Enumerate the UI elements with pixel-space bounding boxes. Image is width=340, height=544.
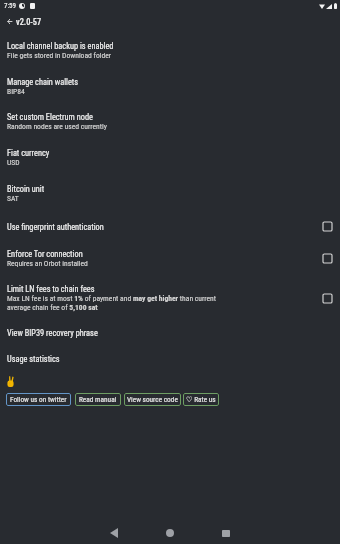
staticText: Limit LN fees to chain fees xyxy=(7,284,95,294)
button[interactable]: Limit LN fees to chain fees xyxy=(0,276,340,320)
staticText: Local channel backup is enabled xyxy=(7,41,114,51)
button[interactable]: Fiat currency xyxy=(0,139,340,175)
button[interactable]: View source code xyxy=(124,393,181,406)
staticText: Enforce Tor connection xyxy=(7,249,83,259)
staticText: View BIP39 recovery phrase xyxy=(7,328,98,338)
button[interactable]: Recents xyxy=(212,522,240,544)
button[interactable]: Bitcoin unit xyxy=(0,175,340,212)
button[interactable]: View BIP39 recovery phrase xyxy=(0,320,340,346)
staticText: Random nodes are used currently xyxy=(7,122,107,131)
staticText: View source code xyxy=(127,395,178,404)
staticText: USD xyxy=(7,158,20,167)
staticText: Fiat currency xyxy=(7,148,50,158)
button[interactable]: ♡ Rate us xyxy=(183,393,219,406)
button[interactable]: Back xyxy=(100,522,128,544)
staticText: Bitcoin unit xyxy=(7,184,45,194)
staticText: Read manual xyxy=(79,395,117,404)
staticText: ♡ Rate us xyxy=(186,395,216,404)
staticText: File gets stored in Download folder xyxy=(7,51,112,60)
button[interactable]: Set custom Electrum node xyxy=(0,104,340,139)
staticText: Manage chain wallets xyxy=(7,77,79,87)
staticText: Usage statistics xyxy=(7,354,60,364)
button[interactable]: Home xyxy=(156,522,184,544)
button[interactable]: Enforce Tor connection xyxy=(0,241,340,276)
button[interactable]: Manage chain wallets xyxy=(0,68,340,104)
staticText: v2.0-57 xyxy=(16,17,42,27)
button[interactable]: Local channel backup is enabled xyxy=(0,33,340,68)
staticText: SAT xyxy=(7,194,19,203)
staticText: Max LN fee is at most 1% of payment and … xyxy=(7,294,217,312)
button[interactable]: Back xyxy=(0,13,16,30)
staticText: BIP84 xyxy=(7,87,25,96)
button[interactable]: Use fingerprint authentication xyxy=(0,212,340,241)
staticText: Follow us on twitter xyxy=(10,395,67,404)
button[interactable]: Follow us on twitter xyxy=(6,393,71,406)
staticText: Requires an Orbot installed xyxy=(7,259,88,268)
button[interactable]: Usage statistics xyxy=(0,346,340,372)
staticText: 7:59 xyxy=(4,2,17,10)
staticText: Use fingerprint authentication xyxy=(7,222,104,232)
button[interactable]: Read manual xyxy=(75,393,121,406)
staticText: Set custom Electrum node xyxy=(7,112,93,122)
